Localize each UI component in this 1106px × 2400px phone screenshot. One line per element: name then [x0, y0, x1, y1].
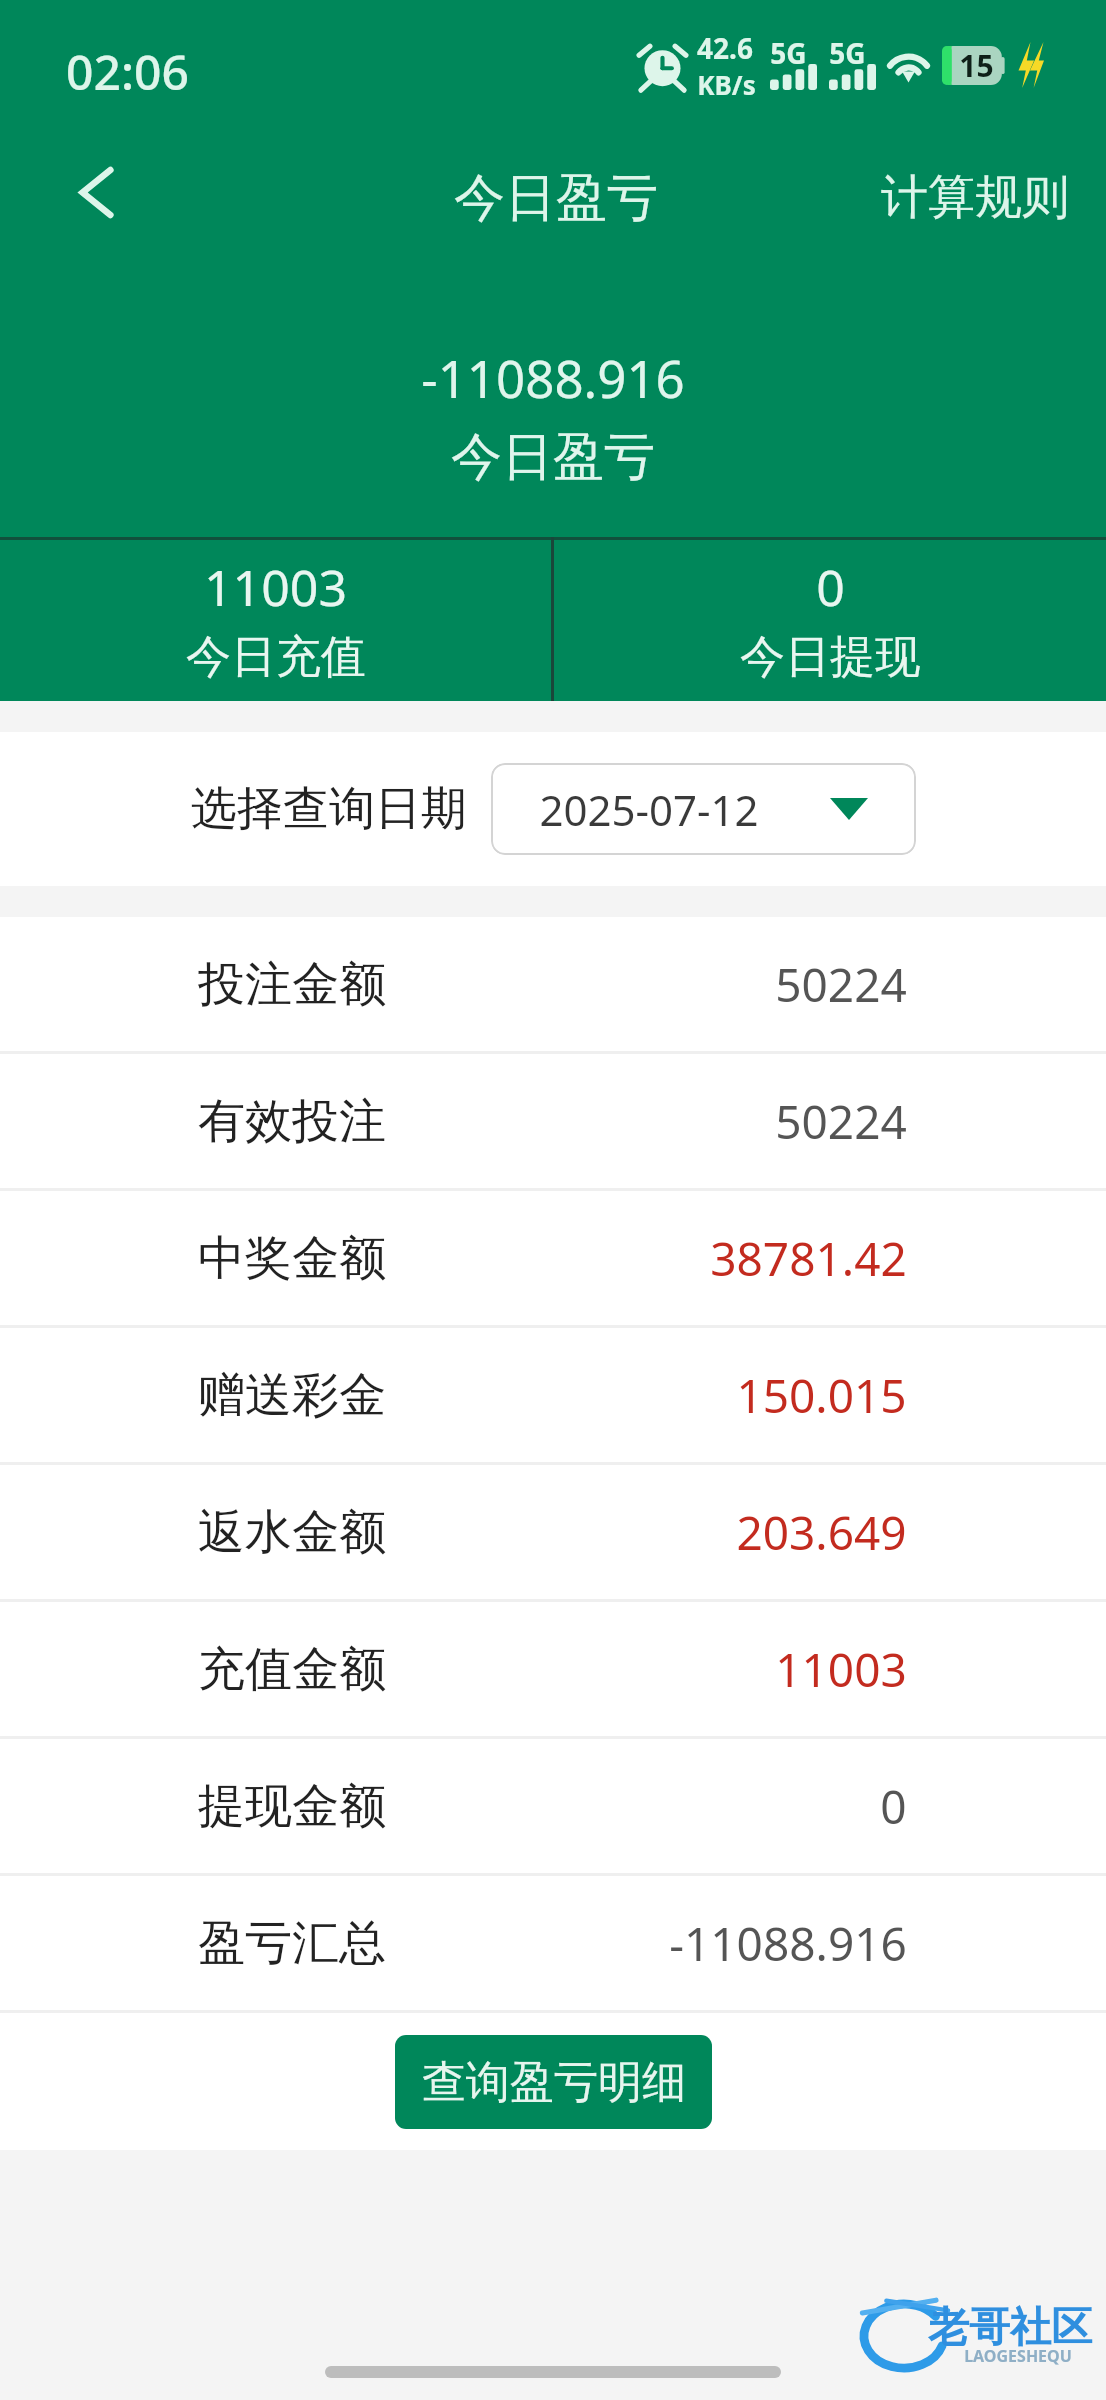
staticText: 有效投注 [198, 1092, 386, 1151]
button[interactable]: 投注金额 [0, 917, 1106, 1051]
staticText: LAOGESHEQU [964, 2345, 1072, 2367]
button[interactable]: 赠送彩金 [0, 1328, 1106, 1462]
staticText: 0 [880, 1775, 907, 1838]
staticText: KB/s [697, 67, 756, 102]
button[interactable]: 盈亏汇总 [0, 1876, 1106, 2010]
staticText: 计算规则 [881, 168, 1069, 227]
staticText: 今日提现 [740, 629, 920, 686]
staticText: 今日盈亏 [451, 425, 655, 489]
button[interactable]: 提现金额 [0, 1739, 1106, 1873]
button[interactable]: 2025-07-12 [491, 763, 916, 855]
button[interactable]: 充值金额 [0, 1602, 1106, 1736]
staticText: 0 [816, 553, 845, 621]
staticText: 老哥社区 [928, 2302, 1092, 2354]
button[interactable]: 11003 [0, 537, 551, 701]
staticText: 5G [770, 34, 807, 72]
staticText: -11088.916 [421, 343, 685, 412]
staticText: 投注金额 [198, 955, 386, 1014]
button[interactable]: 查询盈亏明细 [395, 2035, 712, 2129]
staticText: 选择查询日期 [191, 780, 467, 838]
staticText: 38781.42 [710, 1227, 907, 1290]
staticText: 中奖金额 [198, 1229, 386, 1288]
staticText: -11088.916 [669, 1912, 907, 1975]
staticText: 今日盈亏 [454, 166, 658, 230]
staticText: 充值金额 [198, 1640, 386, 1699]
button[interactable]: 中奖金额 [0, 1191, 1106, 1325]
staticText: 50224 [775, 1090, 907, 1153]
button[interactable]: Back [34, 136, 158, 260]
staticText: 今日充值 [186, 629, 366, 686]
staticText: 02:06 [66, 39, 189, 104]
button[interactable]: 0 [554, 537, 1106, 701]
staticText: 203.649 [736, 1501, 907, 1564]
staticText: 5G [829, 34, 866, 72]
staticText: 15 [959, 45, 994, 86]
button[interactable]: 有效投注 [0, 1054, 1106, 1188]
staticText: 盈亏汇总 [198, 1914, 386, 1973]
staticText: 赠送彩金 [198, 1366, 386, 1425]
staticText: 2025-07-12 [539, 781, 759, 838]
staticText: 150.015 [736, 1364, 907, 1427]
button[interactable]: 返水金额 [0, 1465, 1106, 1599]
staticText: 查询盈亏明细 [422, 2055, 686, 2110]
staticText: 42.6 [697, 29, 753, 67]
staticText: 返水金额 [198, 1503, 386, 1562]
staticText: 提现金额 [198, 1777, 386, 1836]
staticText: 50224 [775, 953, 907, 1016]
button[interactable]: 计算规则 [836, 144, 1106, 251]
staticText: 11003 [204, 553, 347, 621]
staticText: 11003 [775, 1638, 907, 1701]
